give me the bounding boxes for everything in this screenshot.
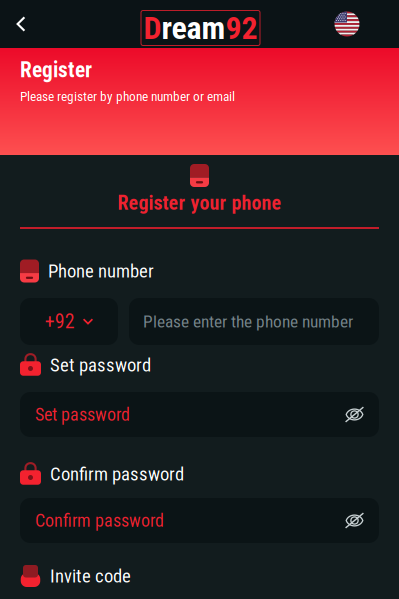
button[interactable]: Set password <box>20 392 379 437</box>
staticText: Please enter the phone number <box>143 311 353 332</box>
staticText: Set password <box>50 354 151 376</box>
staticText: Register your phone <box>117 191 281 215</box>
button[interactable]: Select language <box>326 0 368 48</box>
staticText: Confirm password <box>50 463 184 485</box>
button[interactable]: Confirm password <box>20 498 379 543</box>
staticText: Phone number <box>48 260 154 282</box>
staticText: Invite code <box>50 565 131 587</box>
staticText: Set password <box>35 404 130 425</box>
staticText: Please register by phone number or email <box>20 89 235 104</box>
staticText: ream <box>161 9 225 47</box>
staticText: +92 <box>45 310 75 333</box>
staticText: Confirm password <box>35 510 164 531</box>
button[interactable]: Back <box>0 0 42 48</box>
staticText: 92 <box>225 9 257 47</box>
button[interactable]: Please enter the phone number <box>129 298 379 345</box>
button[interactable]: +92 <box>20 298 118 345</box>
staticText: Register <box>20 57 92 82</box>
staticText: D <box>143 9 161 47</box>
